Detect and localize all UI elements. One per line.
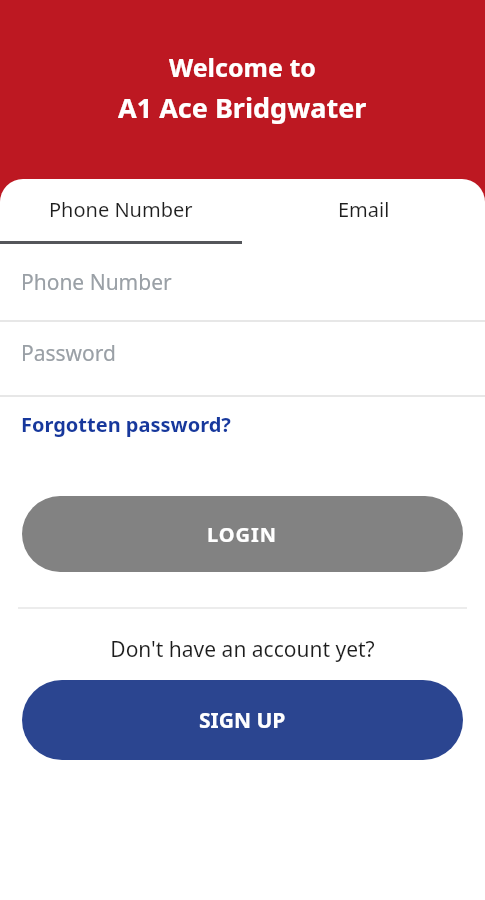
staticText: A1 Ace Bridgwater xyxy=(118,89,367,126)
staticText: Welcome to xyxy=(169,50,316,84)
staticText: LOGIN xyxy=(207,521,278,548)
staticText: Don't have an account yet? xyxy=(0,635,485,664)
staticText: Email xyxy=(338,196,390,223)
button[interactable]: Password xyxy=(0,322,485,395)
staticText: Phone Number xyxy=(21,268,172,297)
button[interactable]: Email xyxy=(242,179,485,241)
button[interactable]: Forgotten password? xyxy=(21,411,231,438)
staticText: Password xyxy=(21,339,116,368)
button[interactable]: LOGIN xyxy=(22,496,463,572)
staticText: SIGN UP xyxy=(199,706,286,735)
staticText: Phone Number xyxy=(49,196,193,223)
button[interactable]: Phone Number xyxy=(0,244,485,320)
button[interactable]: SIGN UP xyxy=(22,680,463,760)
button[interactable]: Phone Number xyxy=(0,179,242,241)
staticText: Forgotten password? xyxy=(21,411,231,438)
